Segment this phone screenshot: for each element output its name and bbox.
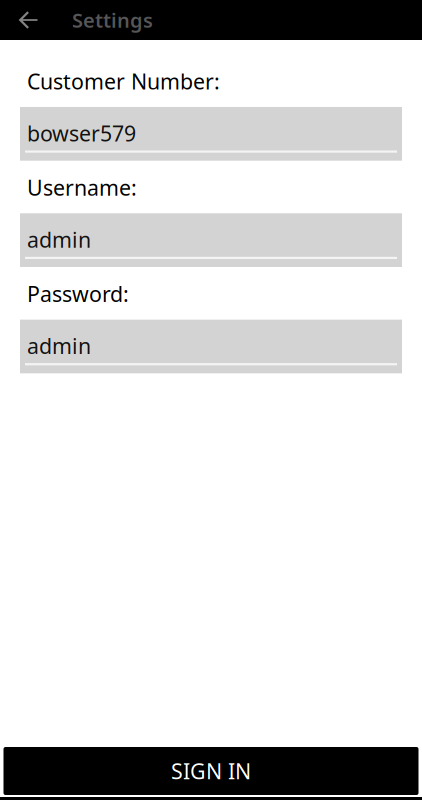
- staticText: Username:: [27, 173, 137, 202]
- staticText: bowser579: [27, 119, 136, 147]
- staticText: Password:: [27, 280, 129, 308]
- staticText: Customer Number:: [27, 67, 220, 95]
- button[interactable]: Customer Number:: [20, 107, 402, 160]
- button[interactable]: Back: [0, 0, 57, 40]
- button[interactable]: Password:: [20, 320, 402, 373]
- button[interactable]: Username:: [20, 214, 402, 267]
- staticText: admin: [27, 332, 91, 360]
- staticText: SIGN IN: [171, 757, 251, 785]
- button[interactable]: SIGN IN: [3, 747, 418, 795]
- staticText: admin: [27, 225, 91, 254]
- staticText: Settings: [72, 7, 153, 33]
